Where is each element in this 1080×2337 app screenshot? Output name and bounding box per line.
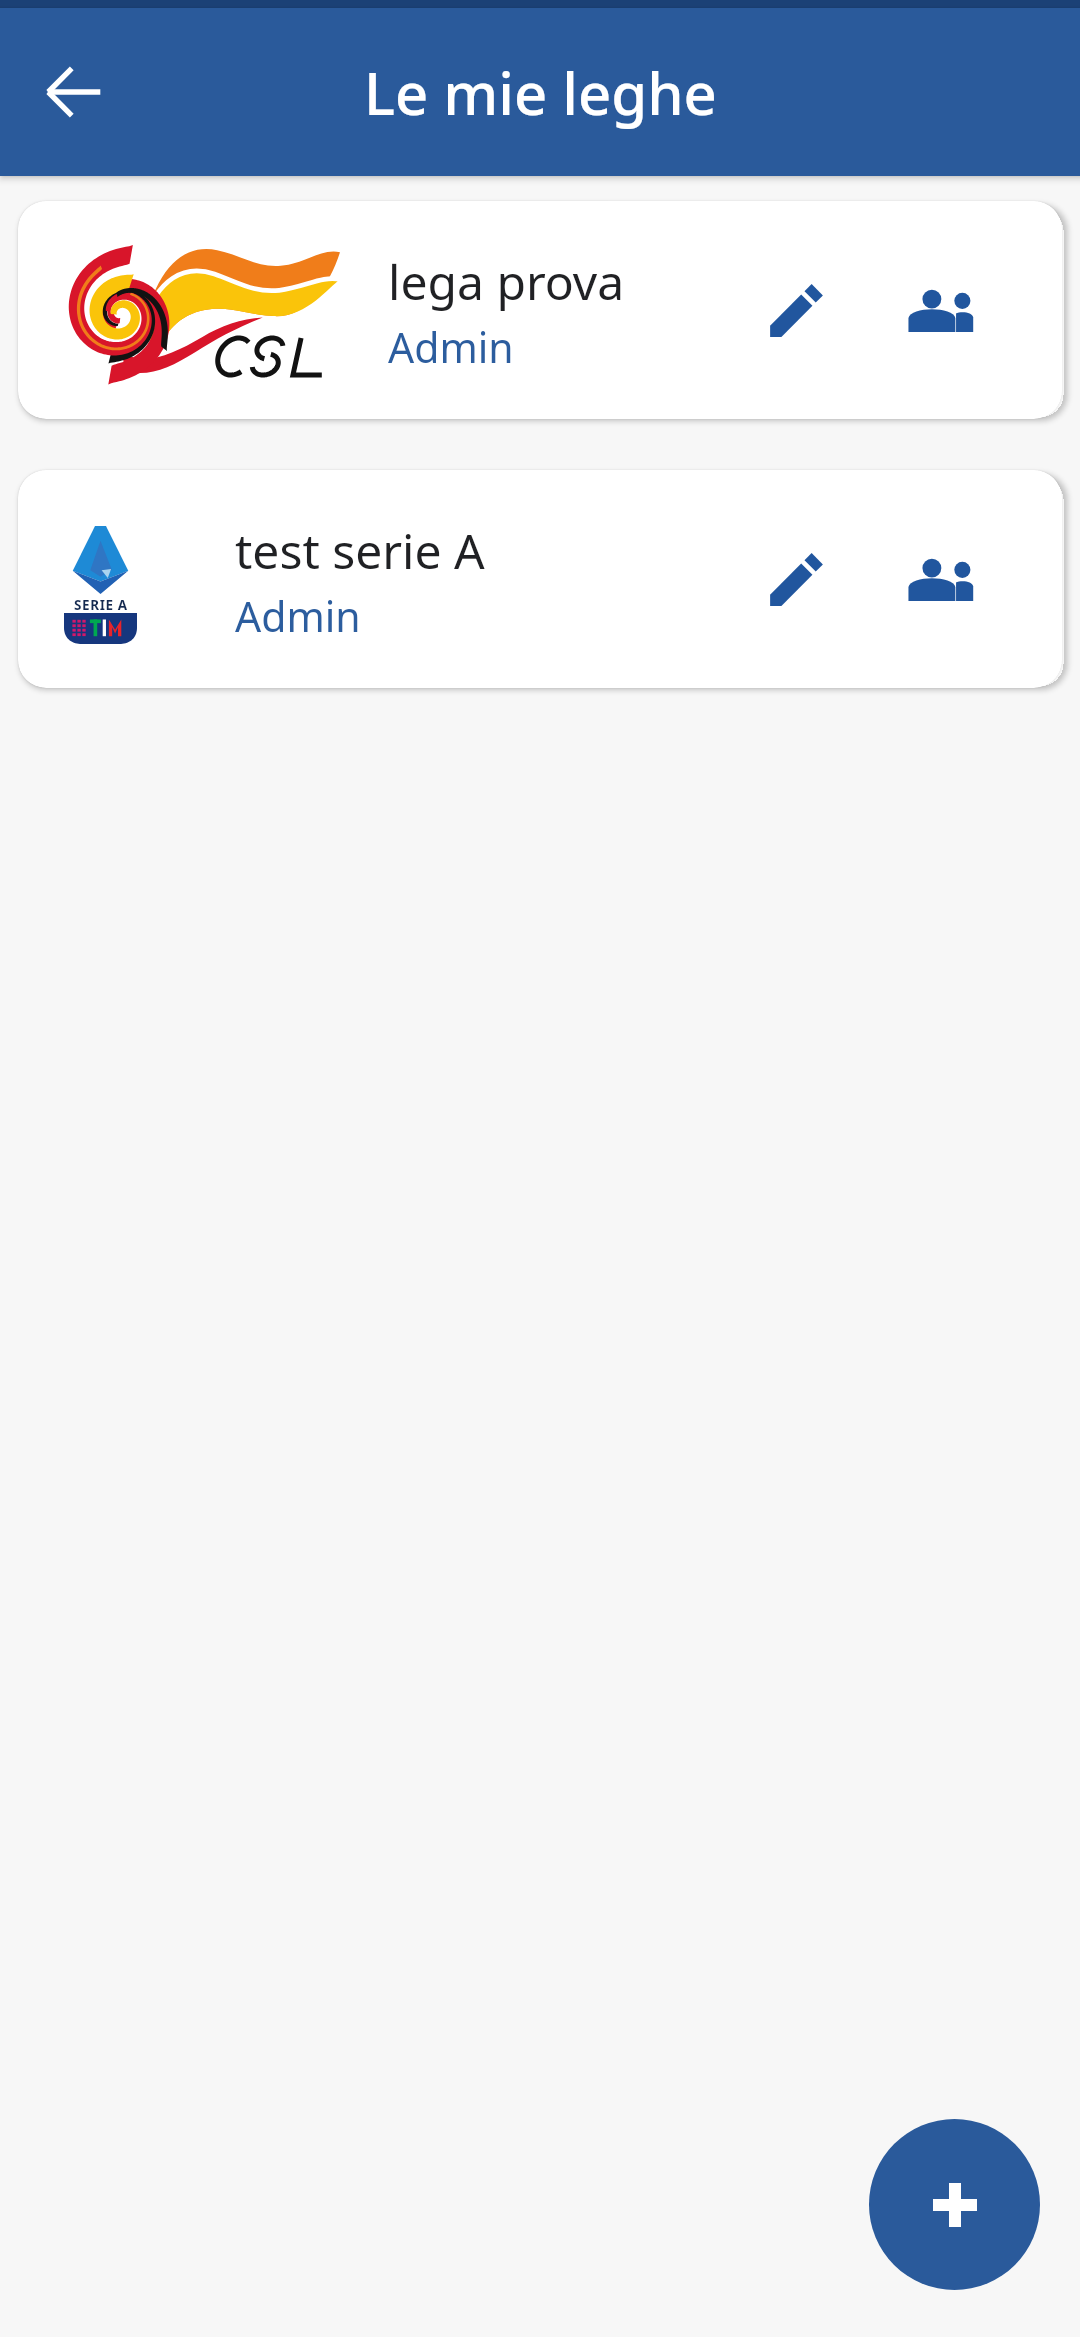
- staticText: test serie A: [235, 518, 485, 583]
- button[interactable]: Edit: [741, 255, 851, 365]
- button[interactable]: SERIE A: [18, 470, 1062, 688]
- button[interactable]: Edit: [741, 524, 851, 634]
- button[interactable]: Back: [26, 44, 122, 140]
- button[interactable]: Members: [886, 255, 996, 365]
- staticText: Admin: [388, 319, 514, 375]
- button[interactable]: Add league: [869, 2119, 1040, 2290]
- staticText: Le mie leghe: [364, 53, 717, 132]
- button[interactable]: lega prova: [18, 201, 1062, 419]
- button[interactable]: Members: [886, 524, 996, 634]
- staticText: SERIE A: [74, 596, 128, 614]
- staticText: Admin: [235, 588, 361, 644]
- staticText: lega prova: [388, 249, 625, 314]
